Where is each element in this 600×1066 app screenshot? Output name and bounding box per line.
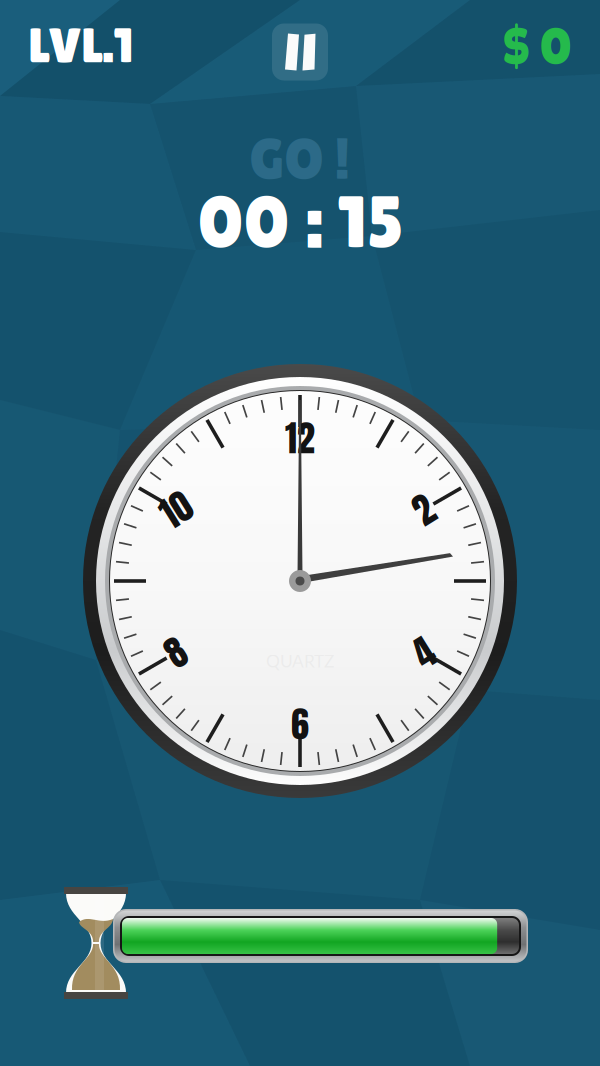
staticText: 4 [415, 625, 433, 680]
staticText: $ 0 [502, 17, 571, 75]
staticText: 12 [285, 411, 315, 465]
button[interactable]: Pause [272, 23, 328, 80]
staticText: 2 [415, 482, 433, 537]
staticText: 00 : 15 [197, 181, 404, 263]
staticText: GO ! [249, 127, 350, 191]
staticText: 8 [167, 625, 185, 680]
staticText: LVL.1 [28, 17, 133, 73]
staticText: 6 [291, 697, 309, 751]
staticText: 10 [161, 482, 191, 537]
